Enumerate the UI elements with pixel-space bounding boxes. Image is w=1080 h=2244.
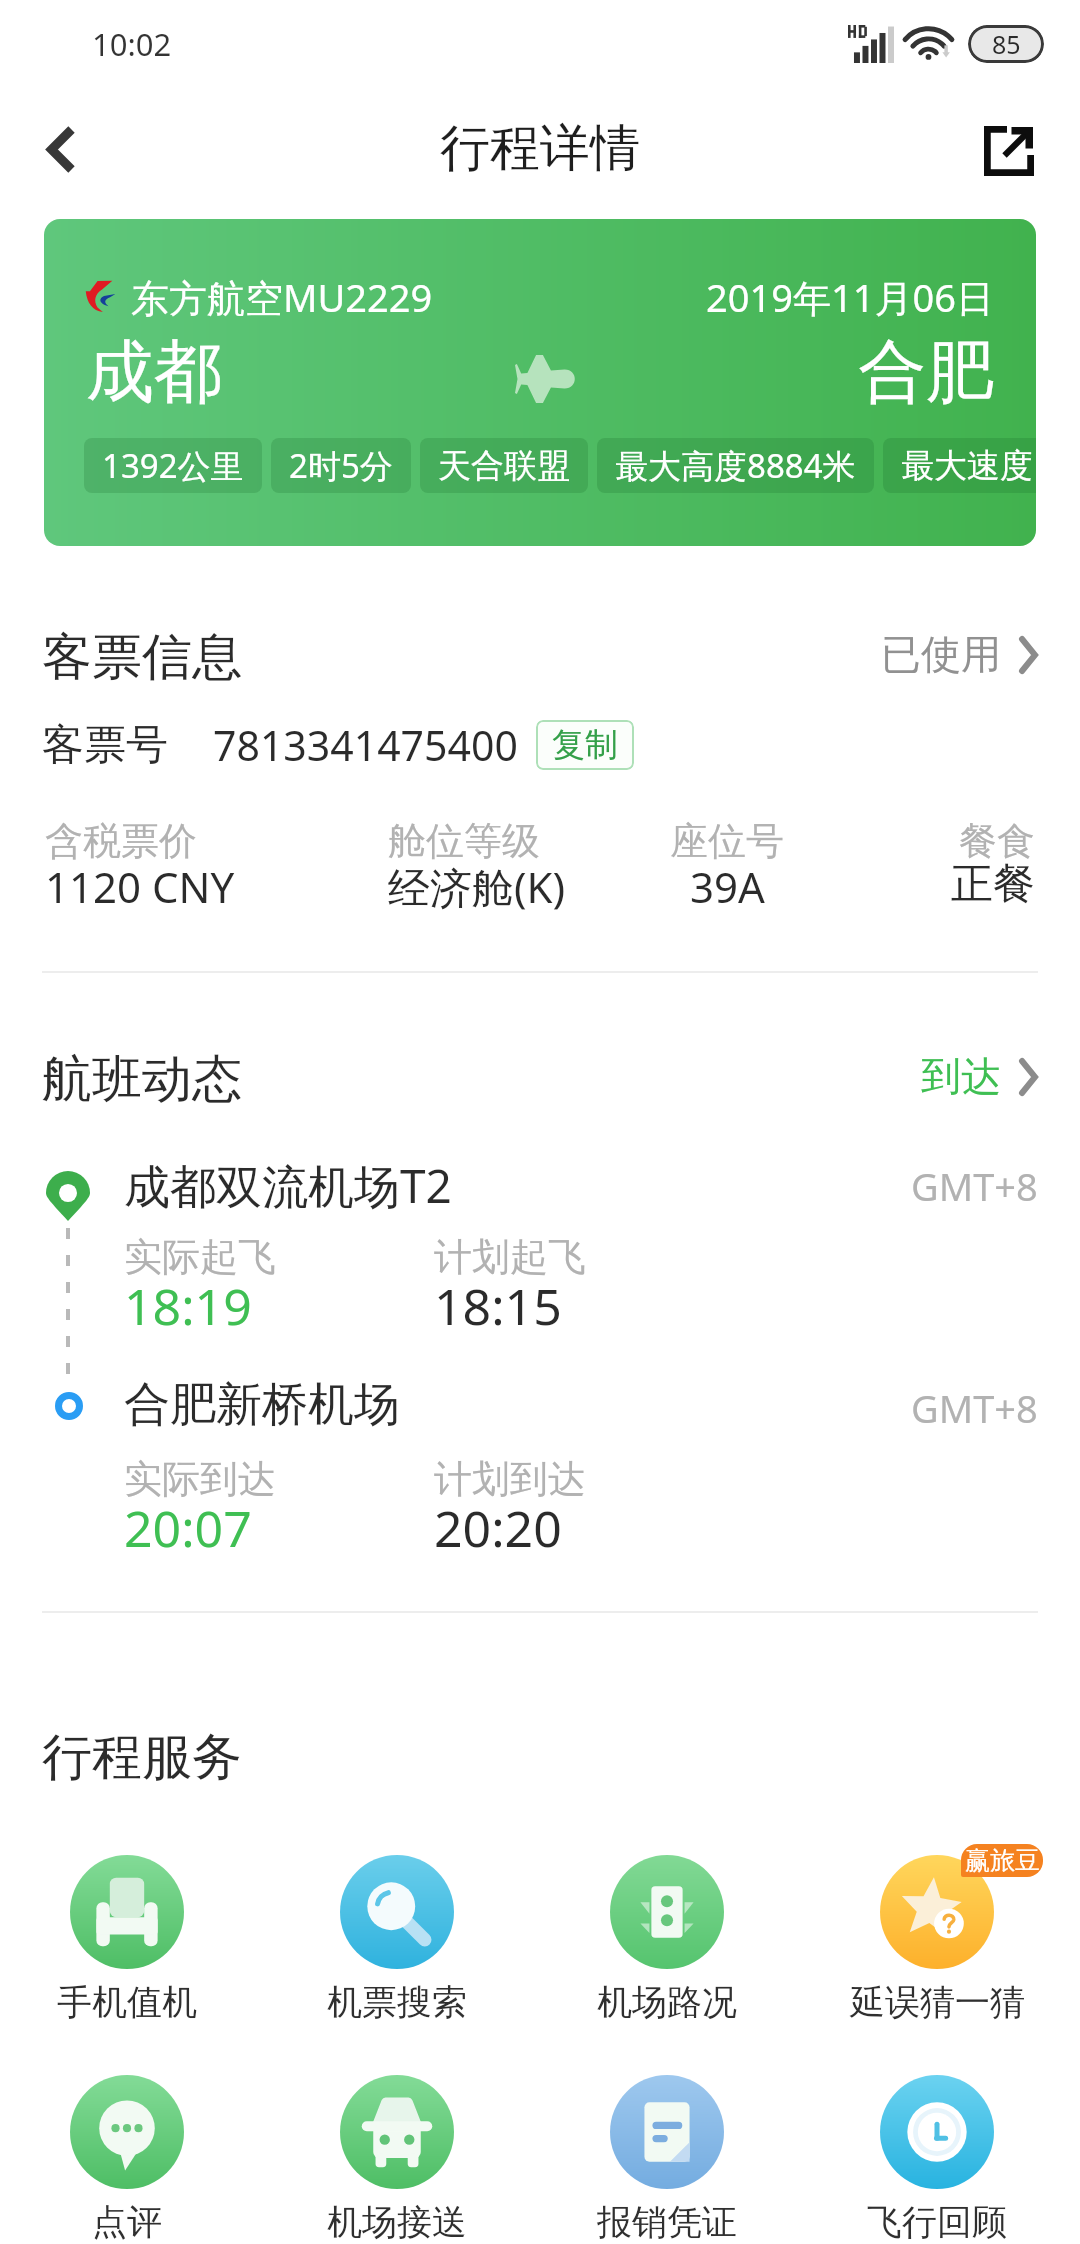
staticText: 最大高度8884米 — [615, 443, 856, 488]
staticText: 合肥新桥机场 — [124, 1376, 400, 1434]
staticText: 延误猜一猜 — [850, 1980, 1025, 2024]
staticText: 已使用 — [881, 629, 1001, 679]
staticText: 合肥 — [858, 330, 994, 416]
staticText: 成都 — [86, 330, 222, 416]
button[interactable]: 报销凭证 — [532, 2058, 802, 2244]
staticText: 报销凭证 — [597, 2200, 737, 2244]
staticText: 18:19 — [124, 1272, 252, 1340]
button[interactable]: 机票搜索 — [262, 1838, 532, 2024]
staticText: 飞行回顾 — [867, 2200, 1007, 2244]
staticText: 行程服务 — [42, 1726, 242, 1789]
staticText: 机场接送 — [327, 2200, 467, 2244]
staticText: 机场路况 — [597, 1980, 737, 2024]
staticText: 含税票价 — [45, 817, 197, 865]
staticText: 点评 — [92, 2200, 162, 2244]
button[interactable]: 点评 — [0, 2058, 262, 2244]
staticText: 行程详情 — [440, 117, 640, 180]
staticText: 2时5分 — [289, 443, 393, 488]
staticText: 座位号 — [670, 817, 784, 865]
button[interactable]: 东方航空MU2229 — [44, 219, 1036, 546]
staticText: 成都双流机场T2 — [124, 1154, 452, 1217]
staticText: 20:20 — [434, 1494, 562, 1562]
staticText: 20:07 — [124, 1494, 252, 1562]
button[interactable]: Back — [0, 92, 130, 205]
staticText: 舱位等级 — [388, 817, 540, 865]
button[interactable]: 客票信息 — [42, 626, 1038, 689]
button[interactable]: 手机值机 — [0, 1838, 262, 2024]
button[interactable]: 飞行回顾 — [802, 2058, 1072, 2244]
staticText: 1392公里 — [102, 443, 244, 488]
staticText: 航班动态 — [42, 1048, 242, 1111]
button[interactable]: 航班动态 — [42, 1048, 1038, 1111]
staticText: 客票信息 — [42, 626, 242, 689]
staticText: 2019年11月06日 — [706, 271, 994, 323]
staticText: 计划起飞 — [434, 1233, 586, 1281]
button[interactable]: 机场路况 — [532, 1838, 802, 2024]
button[interactable]: Share — [950, 92, 1080, 205]
staticText: 计划到达 — [434, 1455, 586, 1503]
staticText: 7813341475400 — [213, 717, 518, 773]
staticText: 天合联盟 — [438, 445, 570, 487]
staticText: 10:02 — [92, 23, 172, 65]
staticText: 39A — [690, 858, 765, 912]
staticText: 客票号 — [42, 719, 168, 772]
staticText: 实际起飞 — [124, 1233, 276, 1281]
button[interactable]: 机场接送 — [262, 2058, 532, 2244]
staticText: 手机值机 — [57, 1980, 197, 2024]
staticText: 餐食 — [959, 817, 1035, 865]
staticText: GMT+8 — [911, 1382, 1038, 1434]
staticText: 赢旅豆 — [965, 1845, 1040, 1876]
staticText: GMT+8 — [911, 1160, 1038, 1212]
staticText: 复制 — [552, 724, 618, 766]
staticText: 实际到达 — [124, 1455, 276, 1503]
button[interactable]: 复制 — [552, 720, 618, 770]
staticText: 1120 CNY — [45, 858, 235, 912]
staticText: 东方航空MU2229 — [131, 271, 433, 323]
button[interactable]: 赢旅豆 — [802, 1838, 1072, 2024]
staticText: 机票搜索 — [327, 1980, 467, 2024]
staticText: 最大速度 — [901, 445, 1033, 487]
staticText: 经济舱(K) — [388, 858, 566, 912]
staticText: 18:15 — [434, 1272, 562, 1340]
staticText: 正餐 — [951, 858, 1035, 911]
staticText: 到达 — [921, 1051, 1001, 1101]
staticText: 85 — [992, 27, 1021, 61]
